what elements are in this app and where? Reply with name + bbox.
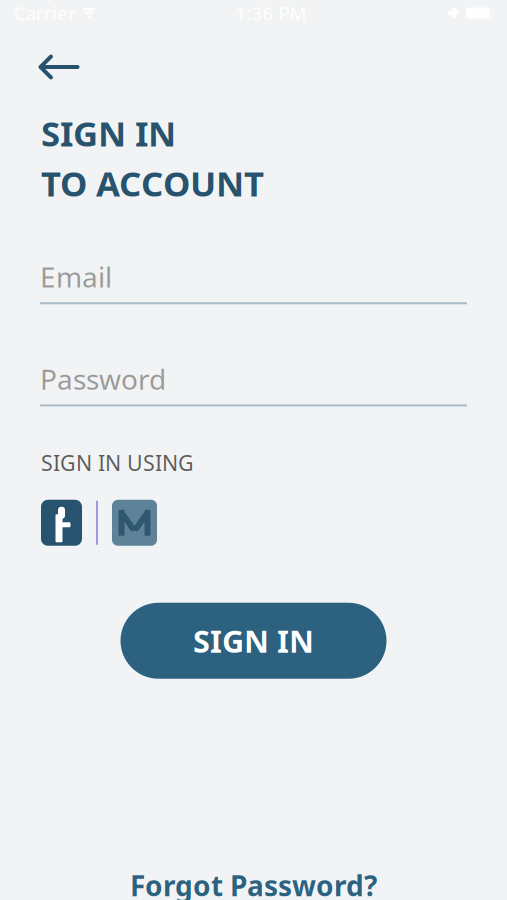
staticText: SIGN IN USING	[41, 448, 194, 477]
staticText: Carrier	[14, 1, 76, 25]
staticText: TO ACCOUNT	[41, 160, 264, 206]
staticText: Forgot Password?	[130, 867, 377, 900]
button[interactable]: Forgot Password?	[0, 867, 507, 900]
button[interactable]: Back	[30, 44, 88, 90]
staticText: Password	[40, 360, 166, 397]
button[interactable]: Sign in with Gmail	[112, 500, 157, 546]
button[interactable]: SIGN IN	[120, 603, 386, 679]
staticText: 1:36 PM	[235, 1, 306, 25]
staticText: SIGN IN	[41, 110, 176, 156]
button[interactable]: Sign in with Facebook	[41, 500, 82, 546]
staticText: Email	[40, 258, 112, 295]
staticText: SIGN IN	[193, 620, 314, 661]
